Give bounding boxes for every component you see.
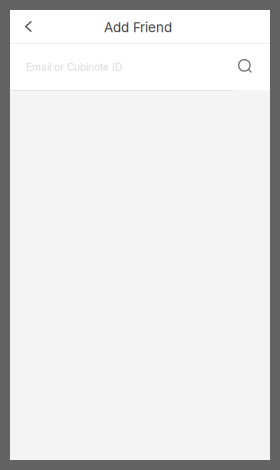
- button[interactable]: Email or Cubinote ID: [10, 44, 233, 90]
- staticText: Email or Cubinote ID: [26, 61, 122, 73]
- button[interactable]: Back: [10, 10, 50, 43]
- button[interactable]: Search: [233, 52, 257, 82]
- staticText: Add Friend: [104, 19, 172, 35]
